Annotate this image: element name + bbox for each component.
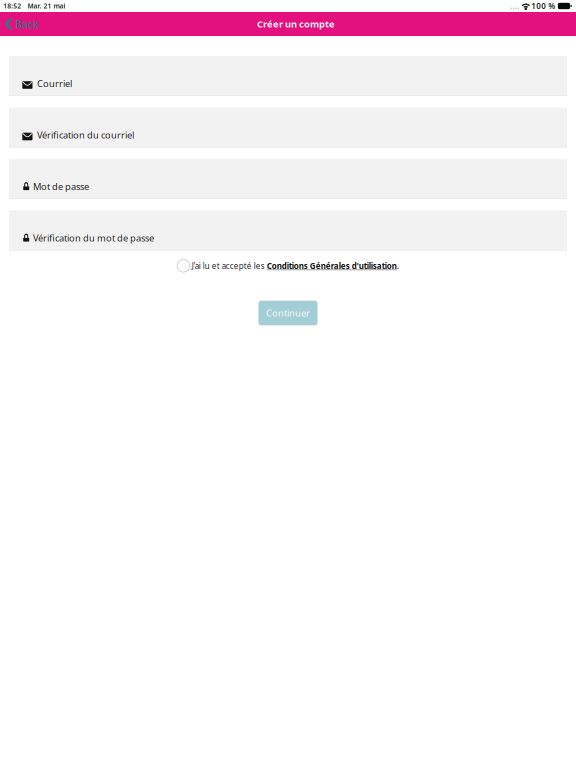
staticText: . [397, 260, 399, 271]
button[interactable]: Courriel [9, 56, 567, 96]
staticText: Conditions Générales d'utilisation [267, 260, 397, 271]
button[interactable]: Accepter les conditions générales [177, 259, 190, 272]
staticText: 100 % [531, 1, 555, 11]
staticText: 18:52 [3, 2, 21, 10]
button[interactable]: Vérification du courriel [9, 107, 567, 147]
button[interactable]: Back [0, 12, 160, 36]
staticText: Mar. 21 mai [27, 2, 65, 10]
staticText: Vérification du mot de passe [33, 232, 154, 244]
button[interactable]: Vérification du mot de passe [9, 210, 567, 250]
staticText: Créer un compte [257, 18, 335, 30]
button[interactable]: Conditions Générales d'utilisation [267, 260, 397, 271]
staticText: Vérification du courriel [37, 129, 134, 141]
button[interactable]: Mot de passe [9, 159, 567, 199]
staticText: Courriel [37, 77, 72, 90]
staticText: J'ai lu et accepté les [192, 260, 267, 271]
staticText: Mot de passe [33, 180, 89, 193]
button[interactable]: Continuer [258, 301, 317, 325]
staticText: Continuer [266, 307, 310, 319]
staticText: Back [15, 17, 39, 31]
